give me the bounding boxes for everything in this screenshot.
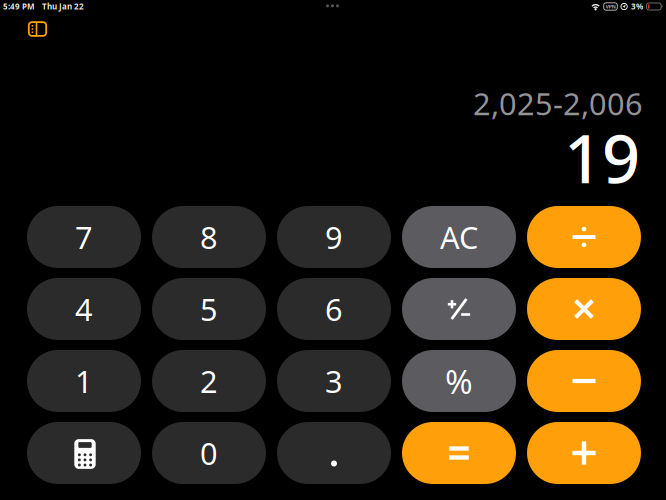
button[interactable]: Divide [527,206,641,268]
staticText: 7 [75,217,93,257]
button[interactable]: 8 [152,206,266,268]
staticText: VPN [605,3,615,10]
button[interactable]: 2 [152,350,266,412]
staticText: 9 [325,217,343,257]
button[interactable]: Plus [527,422,641,484]
button[interactable]: % [402,350,516,412]
button[interactable]: AC [402,206,516,268]
button[interactable]: Show Sidebar [21,17,54,41]
button[interactable]: Equals [402,422,516,484]
staticText: 4 [75,289,93,329]
button[interactable]: 1 [27,350,141,412]
button[interactable]: 0 [152,422,266,484]
staticText: AC [440,217,478,257]
button[interactable]: Minus [527,350,641,412]
button[interactable]: Multiply [527,278,641,340]
staticText: 2 [200,361,218,401]
staticText: 0 [200,433,218,473]
staticText: 19 [564,113,640,201]
staticText: 5:49 PM [3,1,35,12]
button[interactable]: 6 [277,278,391,340]
button[interactable]: 7 [27,206,141,268]
staticText: Thu Jan 22 [42,1,84,12]
button[interactable]: Calculator [27,422,141,484]
button[interactable]: 4 [27,278,141,340]
staticText: 3% [631,1,643,12]
button[interactable]: 9 [277,206,391,268]
staticText: 8 [200,217,218,257]
staticText: 2,025-2,006 [473,83,643,124]
button[interactable]: 3 [277,350,391,412]
staticText: 6 [325,289,343,329]
staticText: % [445,359,473,403]
button[interactable]: Decimal point [277,422,391,484]
button[interactable]: Plus Minus [402,278,516,340]
staticText: 3 [325,361,343,401]
staticText: 1 [75,361,93,401]
staticText: 5 [200,289,218,329]
button[interactable]: 5 [152,278,266,340]
